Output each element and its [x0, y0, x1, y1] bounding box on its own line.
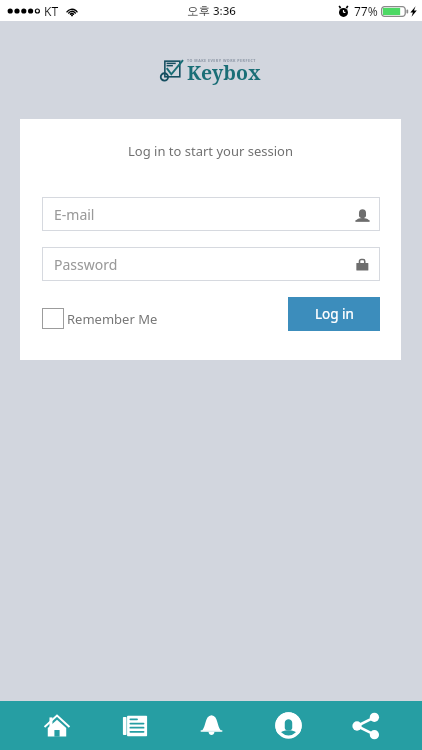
staticText: 77%: [354, 3, 378, 19]
staticText: Keybox: [187, 59, 261, 86]
staticText: Password: [54, 255, 118, 274]
staticText: Log in: [315, 305, 354, 323]
button[interactable]: Profile: [250, 701, 327, 750]
button[interactable]: Documents: [96, 701, 173, 750]
staticText: 오후 3:36: [187, 3, 236, 19]
button[interactable]: E-mail: [42, 197, 380, 231]
button[interactable]: Log in: [288, 297, 380, 331]
button[interactable]: Share: [327, 701, 404, 750]
staticText: Remember Me: [67, 310, 158, 328]
button[interactable]: Remember Me: [42, 308, 158, 329]
staticText: TO MAKE EVERY WORK PERFECT: [187, 58, 256, 63]
button[interactable]: Notifications: [173, 701, 250, 750]
staticText: E-mail: [54, 205, 95, 224]
button[interactable]: Home: [18, 701, 96, 750]
staticText: Log in to start your session: [20, 142, 401, 160]
staticText: KT: [44, 3, 59, 19]
button[interactable]: Password: [42, 247, 380, 281]
